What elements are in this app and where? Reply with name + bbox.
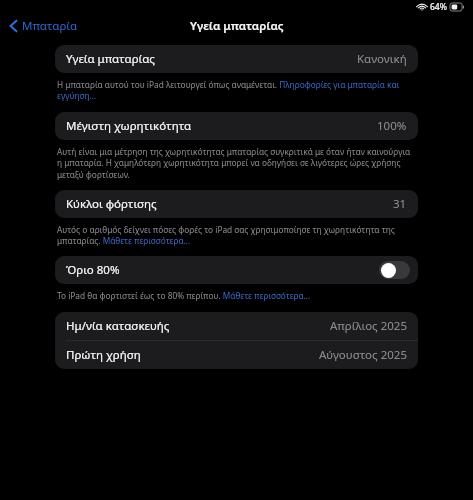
staticText: Κανονική: [357, 51, 407, 67]
button[interactable]: Πρώτη χρήση: [55, 341, 418, 369]
button[interactable]: Μπαταρία: [0, 15, 86, 37]
staticText: Ημ/νία κατασκευής: [66, 318, 170, 334]
button[interactable]: Ημ/νία κατασκευής: [55, 312, 418, 340]
staticText: Αύγουστος 2025: [319, 347, 407, 363]
button[interactable]: Όριο 80%: [55, 256, 418, 284]
staticText: 31: [393, 196, 407, 212]
button[interactable]: Κύκλοι φόρτισης: [55, 190, 418, 218]
staticText: 64%: [430, 1, 447, 13]
staticText: Πρώτη χρήση: [66, 347, 141, 363]
staticText: Υγεία μπαταρίας: [66, 51, 155, 67]
staticText: Αυτή είναι μια μέτρηση της χωρητικότητας…: [57, 146, 416, 180]
staticText: Η μπαταρία αυτού του iPad λειτουργεί όπω…: [57, 79, 416, 101]
staticText: 100%: [377, 118, 407, 134]
staticText: Το iPad θα φορτιστεί έως το 80% περίπου.…: [57, 290, 311, 301]
button[interactable]: Υγεία μπαταρίας: [55, 45, 418, 73]
staticText: Απρίλιος 2025: [330, 318, 407, 334]
staticText: Κύκλοι φόρτισης: [66, 196, 157, 212]
staticText: Μπαταρία: [22, 18, 78, 34]
staticText: Όριο 80%: [66, 262, 120, 278]
button[interactable]: Μέγιστη χωρητικότητα: [55, 112, 418, 140]
button[interactable]: Όριο 80% switch, off: [379, 261, 410, 279]
staticText: Μέγιστη χωρητικότητα: [66, 118, 192, 134]
staticText: Υγεία μπαταρίας: [190, 18, 284, 34]
staticText: Αυτός ο αριθμός δείχνει πόσες φορές το i…: [57, 224, 416, 246]
